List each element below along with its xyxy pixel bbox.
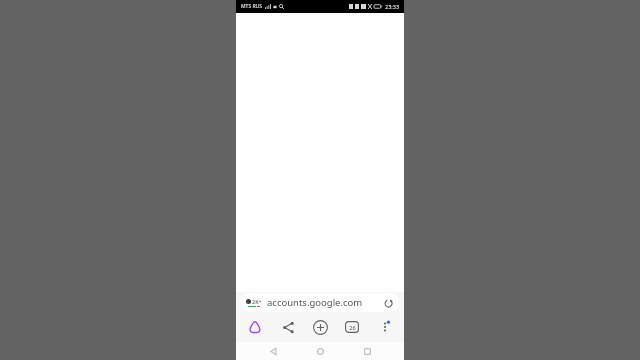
button[interactable]: New tab bbox=[307, 314, 333, 340]
button[interactable]: 2K+ bbox=[241, 293, 399, 312]
staticText: 2K+ bbox=[252, 298, 262, 305]
staticText: 23:33 bbox=[385, 3, 400, 10]
staticText: accounts.google.com bbox=[267, 296, 379, 309]
button[interactable]: Recent apps bbox=[357, 342, 377, 360]
button[interactable]: Back bbox=[263, 342, 283, 360]
button[interactable]: Home bbox=[310, 342, 330, 360]
button[interactable]: Reload bbox=[382, 297, 394, 309]
staticText: MTS RUS bbox=[241, 3, 263, 10]
button[interactable]: Share bbox=[275, 314, 301, 340]
button[interactable]: More options bbox=[372, 314, 398, 340]
staticText: 26 bbox=[349, 324, 356, 331]
button[interactable]: Alice assistant bbox=[242, 314, 268, 340]
button[interactable]: Tabs bbox=[339, 314, 365, 340]
